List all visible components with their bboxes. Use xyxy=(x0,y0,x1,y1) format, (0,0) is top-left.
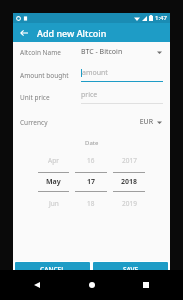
staticText: 1:47 xyxy=(155,14,167,22)
button[interactable]: SAVE xyxy=(93,262,168,277)
staticText: SAVE xyxy=(123,265,139,274)
button[interactable]: EUR xyxy=(81,117,163,127)
staticText: 18 xyxy=(87,199,95,208)
staticText: Altcoin Name xyxy=(20,48,81,57)
staticText: 2017 xyxy=(122,156,137,165)
staticText: price xyxy=(81,90,98,100)
staticText: EUR xyxy=(81,117,153,127)
staticText: Jun xyxy=(49,199,59,208)
button[interactable]: price xyxy=(81,90,163,104)
staticText: Currency xyxy=(20,118,81,127)
button[interactable]: BTC - Bitcoin xyxy=(81,47,163,57)
button[interactable]: 2017 xyxy=(113,156,145,208)
staticText: amount xyxy=(82,68,108,78)
staticText: Date xyxy=(85,139,99,147)
staticText: Amount bought xyxy=(20,71,81,80)
staticText: 2019 xyxy=(122,199,137,208)
button[interactable]: Recent apps xyxy=(139,278,153,292)
staticText: 2018 xyxy=(121,177,138,187)
staticText: May xyxy=(46,177,61,187)
staticText: 16 xyxy=(87,156,95,165)
button[interactable]: amount xyxy=(81,68,163,82)
button[interactable]: Back xyxy=(30,278,44,292)
staticText: BTC - Bitcoin xyxy=(81,47,153,57)
staticText: CANCEL xyxy=(40,265,65,274)
staticText: Add new Altcoin xyxy=(37,27,107,39)
button[interactable]: Back xyxy=(17,26,31,40)
staticText: Unit price xyxy=(20,93,81,102)
button[interactable]: Home xyxy=(85,278,99,292)
staticText: Apr xyxy=(48,156,59,165)
button[interactable]: CANCEL xyxy=(15,262,90,277)
button[interactable]: Apr xyxy=(38,156,69,208)
button[interactable]: 16 xyxy=(75,156,107,208)
staticText: 17 xyxy=(87,177,96,187)
